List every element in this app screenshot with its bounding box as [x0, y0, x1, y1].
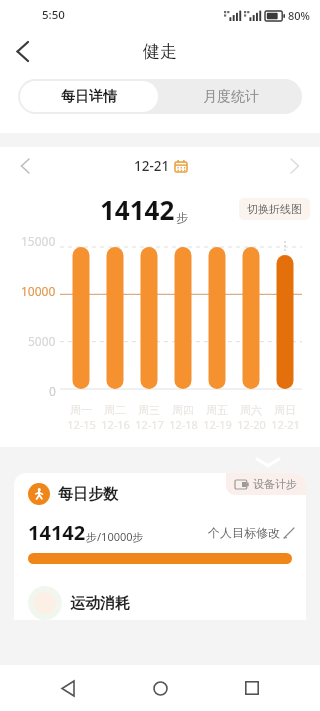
staticText: 周五 — [206, 403, 228, 417]
staticText: 周一 — [70, 403, 92, 417]
staticText: 周日 — [274, 403, 296, 417]
staticText: 周四 — [172, 403, 194, 417]
staticText: 5000 — [28, 333, 56, 349]
staticText: 10000 — [21, 283, 56, 299]
staticText: 15000 — [21, 233, 56, 249]
staticText: 14142 — [100, 192, 175, 227]
button[interactable]: 12-21 — [134, 157, 187, 175]
staticText: 14142 — [28, 519, 86, 546]
staticText: 周二 — [104, 403, 126, 417]
button[interactable]: 每日详情 — [20, 81, 158, 112]
staticText: 周六 — [240, 403, 262, 417]
staticText: 12-20 — [237, 417, 266, 432]
staticText: 运动消耗 — [70, 594, 130, 613]
button[interactable]: Home — [137, 665, 183, 711]
staticText: 每日详情 — [61, 88, 117, 106]
button[interactable]: Next day — [278, 149, 312, 183]
staticText: 12-19 — [203, 417, 232, 432]
staticText: 12-21 — [134, 157, 170, 175]
staticText: 月度统计 — [203, 88, 259, 106]
staticText: 设备计步 — [253, 477, 297, 491]
button[interactable]: Back — [0, 30, 44, 72]
button[interactable]: Recents — [229, 665, 275, 711]
staticText: 12-17 — [135, 417, 164, 432]
button[interactable]: 设备计步 — [226, 473, 306, 495]
staticText: 12-18 — [169, 417, 198, 432]
button[interactable]: 月度统计 — [160, 79, 302, 114]
staticText: 12-21 — [271, 417, 300, 432]
staticText: 健走 — [143, 41, 177, 62]
staticText: 80% — [288, 8, 310, 23]
staticText: 个人目标修改 — [208, 525, 280, 540]
button[interactable]: Previous day — [8, 149, 42, 183]
button[interactable]: 个人目标修改 — [208, 525, 294, 540]
staticText: 5:50 — [42, 7, 65, 23]
button[interactable]: 切换折线图 — [239, 198, 310, 220]
staticText: 周三 — [138, 403, 160, 417]
staticText: 0 — [49, 383, 56, 399]
staticText: 切换折线图 — [247, 202, 302, 216]
staticText: 12-16 — [101, 417, 130, 432]
button[interactable]: Back — [46, 665, 92, 711]
staticText: 12-15 — [67, 417, 96, 432]
staticText: 每日步数 — [58, 485, 118, 504]
staticText: 步 — [176, 210, 188, 225]
staticText: 步/10000步 — [86, 529, 144, 544]
